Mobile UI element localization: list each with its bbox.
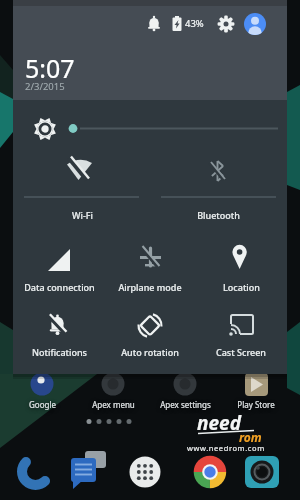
staticText: Auto rotation xyxy=(121,346,179,358)
button[interactable] xyxy=(236,374,276,410)
staticText: Wi-Fi xyxy=(72,209,93,221)
staticText: 2/3/2015 xyxy=(25,80,65,93)
button[interactable] xyxy=(104,300,196,364)
staticText: Notifications xyxy=(32,346,87,358)
button[interactable] xyxy=(93,374,133,410)
staticText: Bluetooth xyxy=(197,209,240,221)
staticText: Google xyxy=(29,399,56,410)
button[interactable] xyxy=(104,232,196,296)
staticText: Apex menu xyxy=(92,399,135,410)
staticText: Play Store xyxy=(237,399,275,410)
button[interactable] xyxy=(127,454,163,490)
button[interactable] xyxy=(165,374,205,410)
staticText: Data connection xyxy=(24,281,95,293)
button[interactable] xyxy=(21,108,287,148)
button[interactable] xyxy=(16,452,56,492)
staticText: rom xyxy=(239,429,262,445)
staticText: need xyxy=(197,410,241,436)
staticText: Location xyxy=(223,281,260,293)
staticText: 5:07 xyxy=(25,51,75,85)
button[interactable] xyxy=(150,150,287,222)
button[interactable] xyxy=(13,300,104,364)
staticText: Cast Screen xyxy=(216,346,266,358)
button[interactable] xyxy=(13,150,150,222)
button[interactable] xyxy=(192,454,228,490)
staticText: 43% xyxy=(185,17,204,30)
button[interactable] xyxy=(196,300,287,364)
button[interactable] xyxy=(244,454,280,490)
button[interactable] xyxy=(242,11,268,37)
button[interactable] xyxy=(13,232,104,296)
button[interactable] xyxy=(211,10,241,38)
button[interactable] xyxy=(196,232,287,296)
button[interactable] xyxy=(70,452,110,492)
staticText: Airplane mode xyxy=(118,281,182,293)
staticText: www.needrom.com xyxy=(187,443,265,453)
staticText: Apex settings xyxy=(160,399,211,410)
button[interactable] xyxy=(22,374,62,410)
